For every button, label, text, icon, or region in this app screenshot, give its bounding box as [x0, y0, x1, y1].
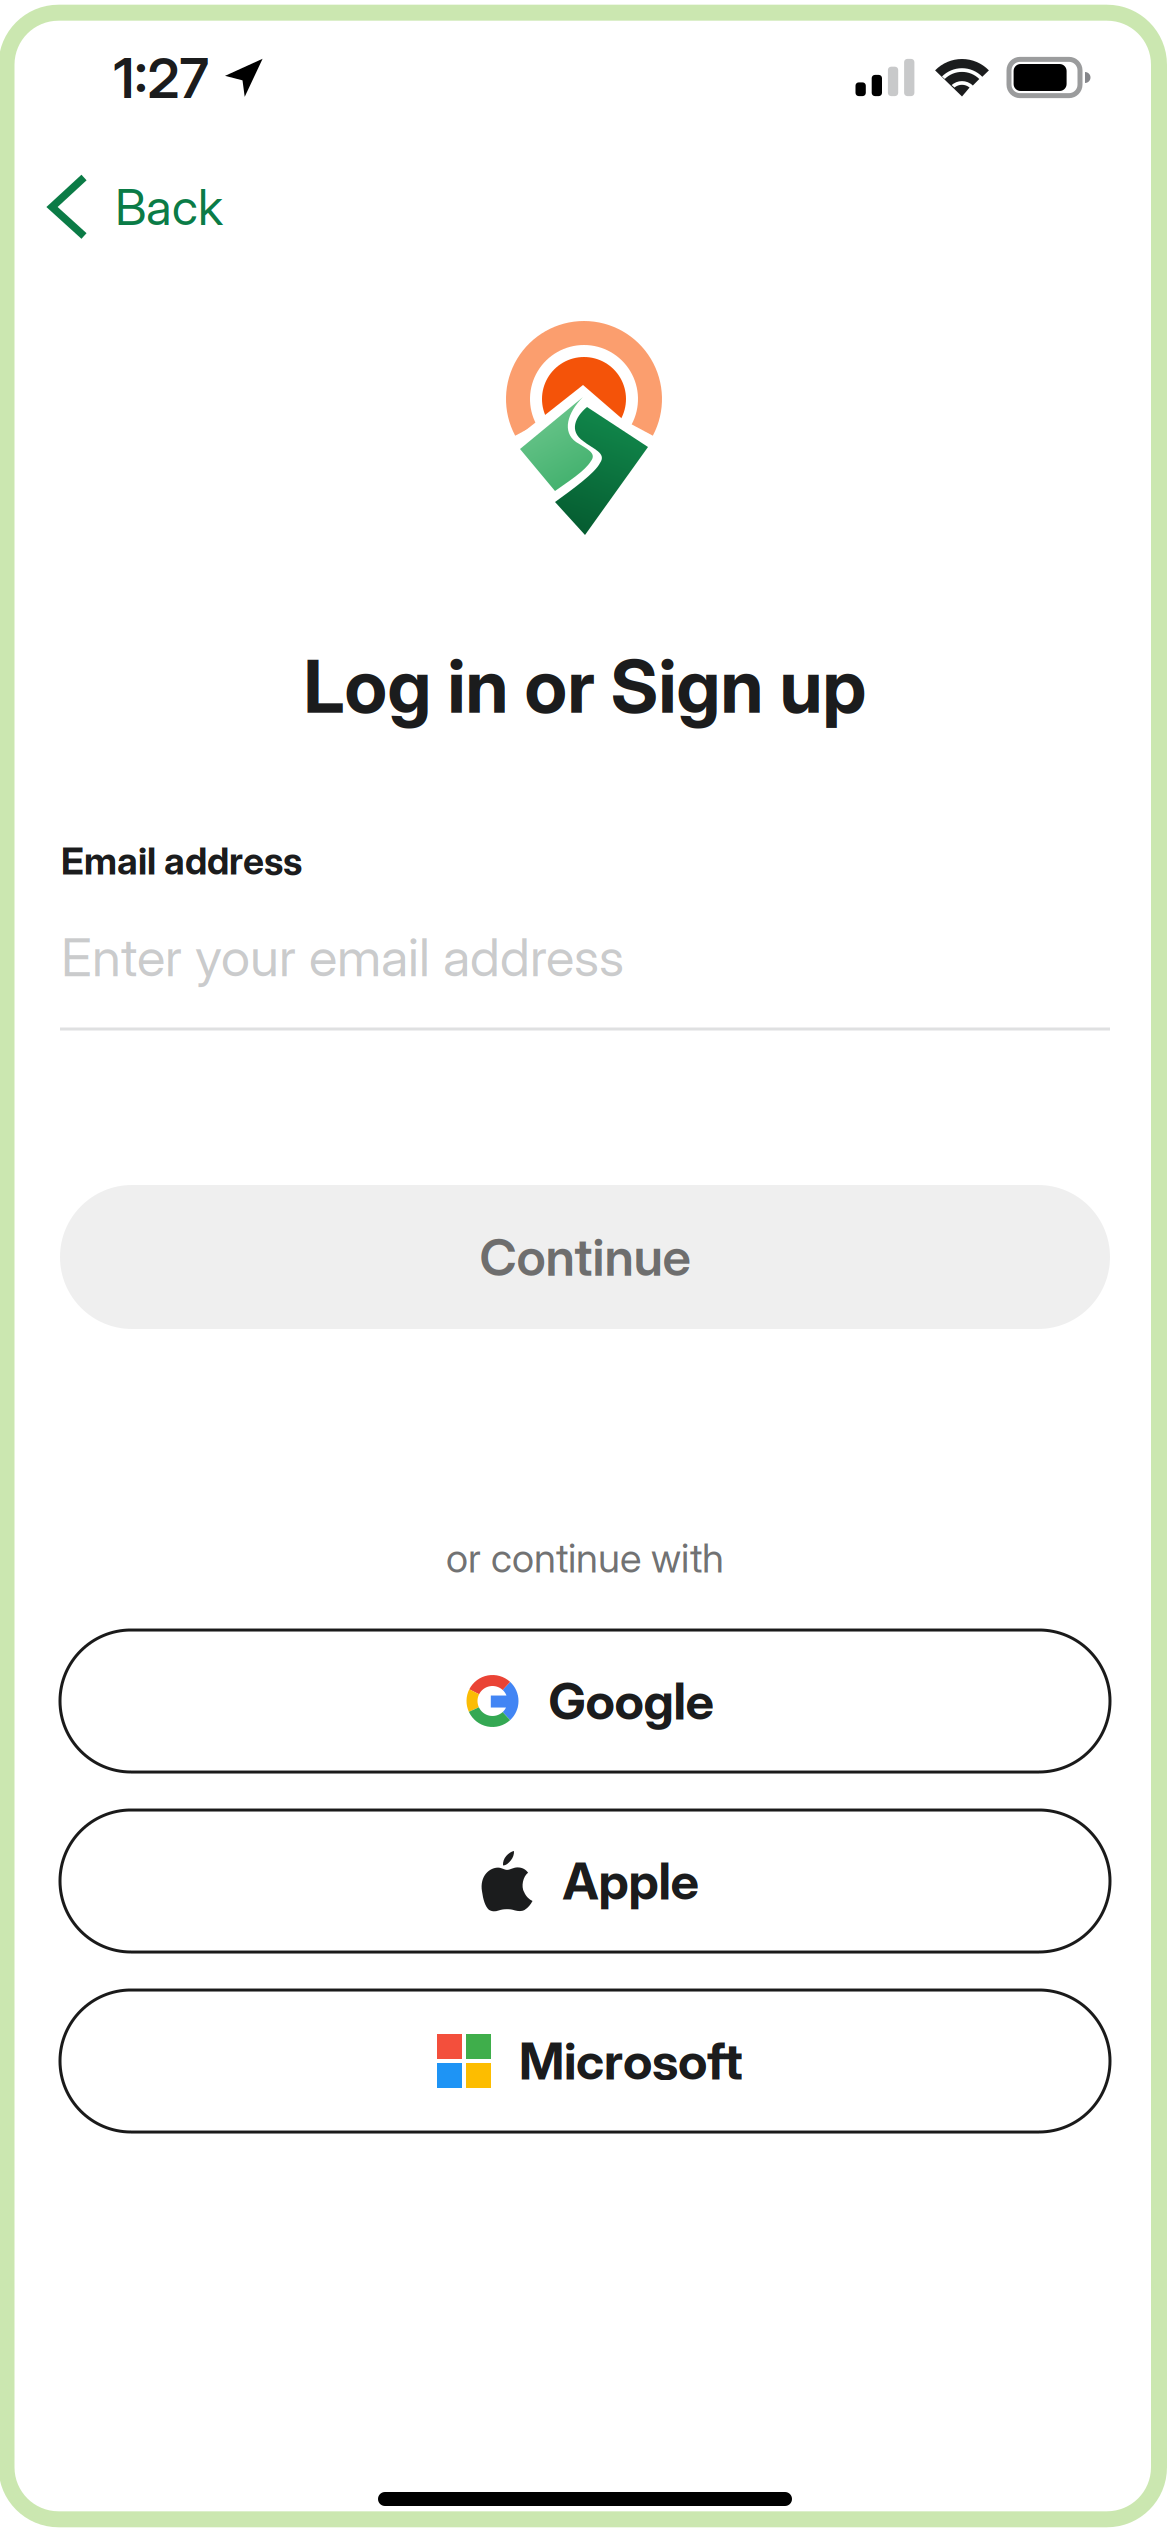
staticText: Continue	[479, 1226, 690, 1288]
staticText: Log in or Sign up	[303, 642, 866, 730]
button[interactable]: Google	[60, 1630, 1110, 1772]
staticText: Email address	[61, 838, 302, 884]
staticText: Microsoft	[519, 2030, 743, 2092]
staticText: 1:27	[113, 45, 208, 111]
staticText: Apple	[562, 1850, 698, 1912]
button[interactable]: Microsoft	[60, 1990, 1110, 2132]
button[interactable]: Back	[44, 159, 269, 255]
staticText: Back	[115, 177, 223, 237]
button[interactable]: Apple	[60, 1810, 1110, 1952]
staticText: or continue with	[446, 1534, 724, 1582]
staticText: Enter your email address	[61, 925, 624, 989]
staticText: Google	[548, 1670, 713, 1732]
button[interactable]: Continue	[60, 1185, 1110, 1329]
